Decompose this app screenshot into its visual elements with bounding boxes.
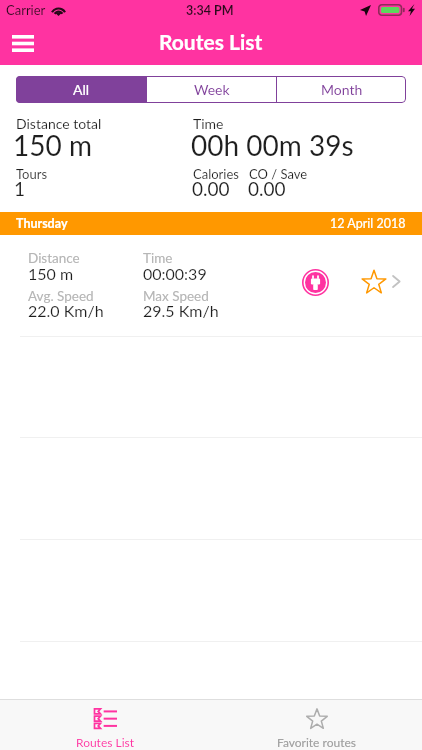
staticText: 0.00 [192, 177, 230, 200]
button[interactable]: Month [277, 76, 406, 103]
staticText: 1 [14, 177, 26, 200]
staticText: 12 April 2018 [330, 216, 406, 231]
staticText: 00:00:39 [143, 264, 207, 283]
staticText: 3:34 PM [186, 3, 234, 18]
staticText: 29.5 Km/h [143, 301, 219, 320]
button[interactable]: All [16, 76, 146, 103]
staticText: Distance total [16, 115, 102, 132]
staticText: Distance [28, 250, 80, 266]
staticText: Favorite routes [277, 735, 356, 749]
staticText: 0.00 [248, 177, 286, 200]
staticText: Avg. Speed [28, 288, 94, 304]
staticText: CO / Save [249, 166, 308, 182]
button[interactable]: Week [147, 76, 276, 103]
button[interactable]: Favorite routes [211, 699, 422, 750]
button[interactable]: Routes List [0, 699, 211, 750]
staticText: Carrier [6, 2, 46, 18]
staticText: 22.0 Km/h [28, 301, 104, 320]
staticText: 150 m [13, 128, 92, 162]
staticText: Max Speed [143, 288, 209, 304]
staticText: Week [194, 81, 230, 98]
button[interactable]: Favourite [355, 263, 392, 300]
button[interactable]: Menu [4, 24, 42, 62]
staticText: Tours [16, 166, 48, 182]
staticText: Thursday [16, 216, 68, 231]
staticText: Time [193, 115, 224, 132]
staticText: Calories [193, 166, 239, 182]
staticText: Month [321, 81, 363, 98]
staticText: 150 m [28, 264, 74, 283]
staticText: 00h 00m 39s [191, 128, 354, 162]
staticText: Routes List [159, 29, 263, 54]
staticText: Time [143, 250, 173, 266]
staticText: Routes List [76, 735, 135, 749]
staticText: All [73, 81, 90, 98]
button[interactable]: Electric route [295, 262, 335, 302]
button[interactable]: Distance [0, 235, 422, 336]
